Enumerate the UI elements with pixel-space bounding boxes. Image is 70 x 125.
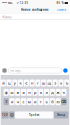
button[interactable]: ю: [55, 98, 61, 105]
staticText: р: [34, 90, 36, 95]
button[interactable]: ъ: [64, 79, 69, 86]
staticText: ⇧: [5, 99, 8, 104]
button[interactable]: а: [21, 89, 26, 96]
staticText: ъ: [66, 80, 68, 86]
button[interactable]: с: [21, 98, 26, 105]
button[interactable]: и: [32, 98, 38, 105]
button[interactable]: я: [9, 98, 14, 105]
staticText: п: [28, 90, 30, 95]
button[interactable]: й: [1, 79, 6, 86]
staticText: з: [54, 80, 56, 86]
staticText: й: [2, 80, 4, 86]
button[interactable]: д: [50, 89, 55, 96]
staticText: э: [63, 90, 65, 95]
staticText: я: [11, 99, 13, 104]
button[interactable]: е: [24, 79, 29, 86]
staticText: ь: [45, 99, 47, 104]
button[interactable]: т: [38, 98, 43, 105]
staticText: н: [31, 80, 33, 86]
staticText: ☺: [10, 113, 14, 117]
staticText: х: [60, 80, 62, 86]
button[interactable]: з: [53, 79, 58, 86]
staticText: м: [28, 99, 31, 104]
button[interactable]: ч: [15, 98, 20, 105]
button[interactable]: ф: [4, 89, 9, 96]
staticText: б: [51, 99, 53, 104]
staticText: 123: [2, 113, 8, 117]
button[interactable]: щ: [47, 79, 52, 86]
button[interactable]: ш: [41, 79, 46, 86]
staticText: Отмена: [56, 8, 65, 11]
button[interactable]: ц: [6, 79, 12, 86]
staticText: ц: [8, 80, 10, 86]
button[interactable]: в: [15, 89, 20, 96]
staticText: щ: [47, 80, 51, 86]
staticText: л: [45, 90, 47, 95]
staticText: т: [40, 99, 42, 104]
staticText: г: [37, 80, 39, 86]
staticText: о: [40, 90, 42, 95]
staticText: и: [34, 99, 36, 104]
button[interactable]: э: [61, 89, 66, 96]
staticText: 86 %: [57, 1, 64, 5]
staticText: ф: [5, 90, 8, 95]
button[interactable]: ж: [55, 89, 61, 96]
button[interactable]: ⇧: [4, 98, 9, 105]
staticText: ж: [57, 90, 60, 95]
staticText: в: [17, 90, 19, 95]
staticText: у: [14, 80, 16, 86]
button[interactable]: к: [18, 79, 23, 86]
staticText: Кому:: [2, 14, 12, 19]
button[interactable]: Ввод: [54, 111, 68, 118]
button[interactable]: г: [35, 79, 40, 86]
staticText: ш: [42, 80, 46, 86]
staticText: ⌫: [61, 99, 67, 104]
staticText: iMessage: [10, 69, 22, 72]
staticText: д: [51, 90, 53, 95]
button[interactable]: у: [12, 79, 17, 86]
staticText: а: [22, 90, 24, 95]
button[interactable]: Отмена: [56, 8, 65, 11]
button[interactable]: б: [50, 98, 55, 105]
button[interactable]: Send: [63, 68, 68, 73]
staticText: •••••: [2, 1, 7, 5]
staticText: Пробел: [29, 113, 40, 117]
staticText: ю: [57, 99, 60, 104]
staticText: ы: [10, 90, 13, 95]
button[interactable]: о: [38, 89, 43, 96]
button[interactable]: Пробел: [15, 111, 53, 118]
button[interactable]: п: [27, 89, 32, 96]
button[interactable]: ⌫: [61, 98, 66, 105]
staticText: 12:35: [19, 1, 28, 5]
button[interactable]: ы: [9, 89, 14, 96]
button[interactable]: л: [44, 89, 49, 96]
staticText: ч: [17, 99, 19, 104]
staticText: Новое сообщение: [21, 8, 49, 11]
staticText: ᯤ: [16, 1, 18, 5]
button[interactable]: х: [58, 79, 64, 86]
staticText: к: [20, 80, 22, 86]
staticText: с: [22, 99, 24, 104]
staticText: Ввод: [57, 113, 65, 117]
button[interactable]: ь: [44, 98, 49, 105]
staticText: е: [25, 80, 27, 86]
button[interactable]: Apps: [2, 68, 7, 73]
button[interactable]: ☺: [9, 111, 14, 118]
button[interactable]: р: [32, 89, 38, 96]
button[interactable]: н: [29, 79, 35, 86]
button[interactable]: м: [27, 98, 32, 105]
staticText: МТС: [8, 1, 13, 5]
button[interactable]: 123: [2, 111, 8, 118]
